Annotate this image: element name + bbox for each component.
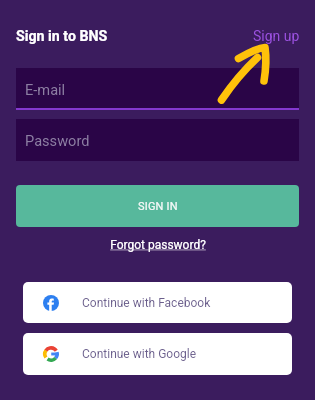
other: Facebook bbox=[43, 295, 59, 311]
button[interactable]: Sign in to BNS bbox=[16, 28, 108, 45]
button[interactable]: Forgot password? bbox=[110, 238, 206, 252]
button[interactable]: Password bbox=[16, 119, 299, 161]
button[interactable]: Facebook bbox=[23, 282, 292, 323]
staticText: Forgot password? bbox=[110, 238, 206, 252]
staticText: Continue with Facebook bbox=[82, 296, 211, 310]
staticText: Sign in to BNS bbox=[16, 28, 108, 45]
button[interactable]: E-mail bbox=[16, 68, 299, 110]
staticText: SIGN IN bbox=[138, 200, 178, 213]
button[interactable]: Google bbox=[23, 333, 292, 375]
staticText: Sign up bbox=[253, 28, 300, 44]
button[interactable]: SIGN IN bbox=[16, 185, 299, 227]
staticText: Continue with Google bbox=[82, 347, 197, 361]
other: Google bbox=[43, 346, 59, 362]
staticText: Password bbox=[25, 132, 90, 149]
staticText: E-mail bbox=[25, 81, 66, 98]
button[interactable]: Sign up bbox=[253, 28, 300, 44]
